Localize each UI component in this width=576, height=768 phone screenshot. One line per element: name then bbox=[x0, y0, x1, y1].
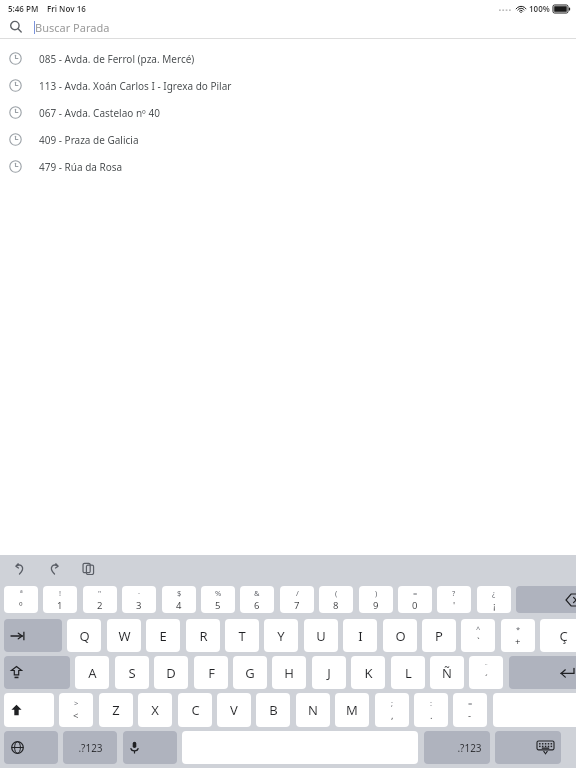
button[interactable]: S bbox=[115, 656, 149, 689]
staticText: - bbox=[468, 709, 472, 722]
staticText: Q bbox=[79, 627, 90, 645]
button[interactable]: Caps lock bbox=[4, 656, 70, 689]
staticText: Buscar Parada bbox=[35, 20, 110, 35]
button[interactable]: % bbox=[201, 586, 235, 613]
button[interactable]: Z bbox=[99, 693, 133, 727]
button[interactable]: .?123 bbox=[424, 731, 490, 764]
staticText: : bbox=[430, 698, 433, 708]
button[interactable]: Tab bbox=[4, 619, 62, 652]
button[interactable]: F bbox=[194, 656, 228, 689]
button[interactable]: I bbox=[343, 619, 377, 652]
button[interactable]: Y bbox=[264, 619, 298, 652]
button[interactable]: X bbox=[138, 693, 172, 727]
button[interactable]: A bbox=[75, 656, 109, 689]
button[interactable]: ¿ bbox=[477, 586, 511, 613]
button[interactable]: K bbox=[351, 656, 385, 689]
button[interactable]: = bbox=[453, 693, 487, 727]
button[interactable]: L bbox=[391, 656, 425, 689]
button[interactable]: / bbox=[280, 586, 314, 613]
button[interactable]: ^ bbox=[461, 619, 495, 652]
staticText: ¨ bbox=[484, 661, 489, 671]
staticText: 5 bbox=[215, 599, 221, 612]
staticText: 7 bbox=[294, 599, 300, 612]
button[interactable]: & bbox=[240, 586, 274, 613]
staticText: H bbox=[284, 664, 294, 682]
staticText: " bbox=[98, 588, 102, 598]
staticText: ' bbox=[453, 599, 456, 612]
button[interactable]: ( bbox=[319, 586, 353, 613]
button[interactable]: Hide keyboard bbox=[495, 731, 561, 764]
staticText: V bbox=[230, 701, 238, 719]
button[interactable]: 409 - Praza de Galicia bbox=[0, 126, 576, 153]
button[interactable]: 113 - Avda. Xoán Carlos I - Igrexa do Pi… bbox=[0, 72, 576, 99]
button[interactable]: M bbox=[335, 693, 369, 727]
staticText: R bbox=[199, 627, 208, 645]
button[interactable]: ¨ bbox=[469, 656, 503, 689]
staticText: ? bbox=[452, 588, 456, 598]
staticText: N bbox=[308, 701, 318, 719]
button[interactable]: D bbox=[154, 656, 188, 689]
button[interactable]: C bbox=[178, 693, 212, 727]
button[interactable]: J bbox=[312, 656, 346, 689]
button[interactable]: · bbox=[122, 586, 156, 613]
staticText: 409 - Praza de Galicia bbox=[39, 133, 139, 147]
button[interactable]: ª bbox=[4, 586, 38, 613]
button[interactable]: T bbox=[225, 619, 259, 652]
button[interactable]: U bbox=[304, 619, 338, 652]
button[interactable]: Shift bbox=[4, 693, 54, 727]
button[interactable]: ; bbox=[375, 693, 409, 727]
button[interactable]: W bbox=[107, 619, 141, 652]
button[interactable]: O bbox=[383, 619, 417, 652]
button[interactable]: " bbox=[83, 586, 117, 613]
staticText: I bbox=[358, 627, 363, 645]
staticText: · bbox=[138, 588, 141, 598]
button[interactable]: Undo bbox=[10, 559, 28, 577]
button[interactable]: Search bbox=[0, 16, 576, 38]
button[interactable]: $ bbox=[162, 586, 196, 613]
staticText: B bbox=[269, 701, 278, 719]
button[interactable]: : bbox=[414, 693, 448, 727]
button[interactable]: E bbox=[146, 619, 180, 652]
button[interactable]: ? bbox=[437, 586, 471, 613]
button[interactable]: N bbox=[296, 693, 330, 727]
staticText: + bbox=[515, 635, 521, 648]
button[interactable]: Voice input bbox=[123, 731, 177, 764]
staticText: G bbox=[245, 664, 255, 682]
button[interactable]: Ç bbox=[540, 619, 576, 652]
button[interactable]: > bbox=[59, 693, 93, 727]
button[interactable]: V bbox=[217, 693, 251, 727]
staticText: T bbox=[238, 627, 246, 645]
button[interactable]: Redo bbox=[45, 559, 63, 577]
button[interactable]: Delete bbox=[516, 586, 576, 613]
button[interactable]: R bbox=[186, 619, 220, 652]
button[interactable]: Return bbox=[509, 656, 576, 689]
button[interactable]: B bbox=[256, 693, 290, 727]
button[interactable]: 067 - Avda. Castelao nº 40 bbox=[0, 99, 576, 126]
button[interactable]: 479 - Rúa da Rosa bbox=[0, 153, 576, 180]
staticText: = bbox=[413, 588, 418, 598]
staticText: 9 bbox=[373, 599, 379, 612]
button[interactable]: 085 - Avda. de Ferrol (pza. Mercé) bbox=[0, 45, 576, 72]
button[interactable]: Ñ bbox=[430, 656, 464, 689]
button[interactable]: Paste bbox=[79, 559, 97, 577]
staticText: K bbox=[364, 664, 373, 682]
staticText: ¡ bbox=[493, 599, 496, 612]
staticText: .?123 bbox=[457, 741, 482, 755]
staticText: Z bbox=[112, 701, 120, 719]
button[interactable]: Q bbox=[67, 619, 101, 652]
button[interactable]: G bbox=[233, 656, 267, 689]
button[interactable]: ! bbox=[43, 586, 77, 613]
button[interactable]: P bbox=[422, 619, 456, 652]
button[interactable]: ) bbox=[359, 586, 393, 613]
button[interactable]: = bbox=[398, 586, 432, 613]
button[interactable]: .?123 bbox=[63, 731, 117, 764]
button[interactable]: H bbox=[272, 656, 306, 689]
staticText: E bbox=[159, 627, 167, 645]
button[interactable]: * bbox=[501, 619, 535, 652]
staticText: C bbox=[191, 701, 200, 719]
staticText: ( bbox=[335, 588, 338, 598]
staticText: ¿ bbox=[492, 588, 496, 598]
button[interactable]: Change language bbox=[4, 731, 58, 764]
